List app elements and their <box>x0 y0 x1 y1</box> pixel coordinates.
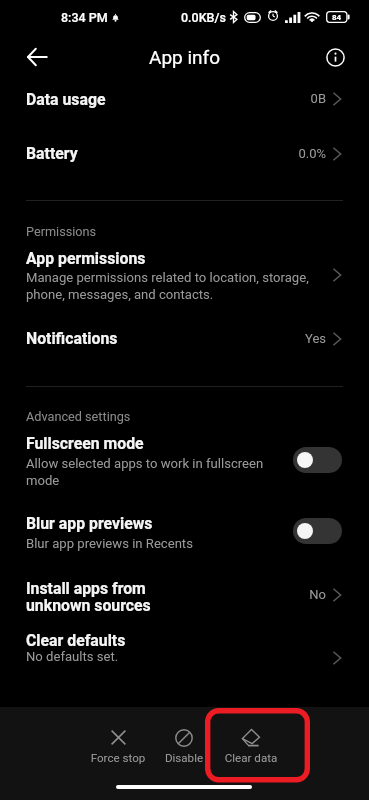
staticText: 0.0KB/s <box>181 10 226 25</box>
button[interactable]: Fullscreen mode <box>293 447 342 473</box>
staticText: Blur app previews <box>26 514 153 533</box>
button[interactable] <box>0 315 369 363</box>
staticText: Blur app previews in Recents <box>26 536 193 551</box>
button[interactable]: About app <box>320 42 350 72</box>
staticText: Force stop <box>79 751 157 765</box>
button[interactable]: Force stop <box>79 714 157 776</box>
staticText: mode <box>26 473 60 488</box>
staticText: Disable <box>155 751 213 765</box>
staticText: Yes <box>206 331 326 346</box>
button[interactable] <box>0 136 369 191</box>
staticText: Battery <box>26 144 78 163</box>
staticText: Notifications <box>26 329 118 348</box>
button[interactable]: Back <box>20 40 54 74</box>
staticText: Clear data <box>213 751 289 765</box>
button[interactable] <box>0 243 369 308</box>
staticText: No defaults set. <box>26 649 119 664</box>
staticText: 0.0% <box>206 146 326 161</box>
button[interactable]: Clear data <box>213 714 289 776</box>
staticText: unknown sources <box>26 596 151 615</box>
staticText: Fullscreen mode <box>26 434 144 453</box>
button[interactable] <box>0 428 369 490</box>
button[interactable]: Blur app previews <box>293 518 342 544</box>
staticText: Manage permissions related to location, … <box>26 270 309 285</box>
staticText: Clear defaults <box>26 631 126 650</box>
staticText: App info <box>149 46 220 68</box>
staticText: Permissions <box>26 224 97 239</box>
button[interactable] <box>0 81 369 136</box>
staticText: App permissions <box>26 249 146 268</box>
staticText: phone, messages, and contacts. <box>26 287 214 302</box>
staticText: 84 <box>332 13 342 22</box>
button[interactable] <box>0 565 369 620</box>
staticText: No <box>206 587 326 602</box>
staticText: Install apps from <box>26 579 146 598</box>
staticText: Advanced settings <box>26 409 131 424</box>
staticText: Allow selected apps to work in fullscree… <box>26 456 264 471</box>
button[interactable] <box>0 500 369 555</box>
staticText: 8:34 PM <box>61 10 108 25</box>
staticText: 0B <box>206 91 326 106</box>
staticText: Data usage <box>26 90 106 109</box>
button[interactable]: Disable <box>155 714 213 776</box>
button[interactable] <box>0 622 369 677</box>
